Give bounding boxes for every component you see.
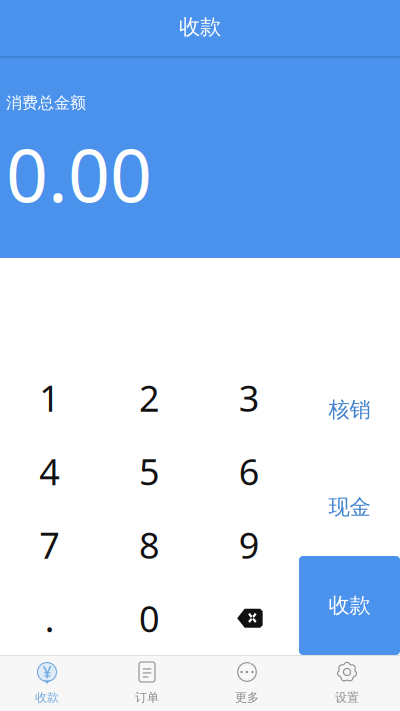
staticText: . (45, 594, 55, 642)
staticText: 核销 (328, 397, 370, 423)
staticText: ¥ (42, 661, 51, 683)
staticText: 收款 (35, 690, 59, 705)
staticText: 更多 (235, 690, 259, 705)
staticText: 1 (39, 374, 60, 422)
button[interactable]: . (0, 581, 100, 655)
staticText: 设置 (335, 690, 359, 705)
staticText: 4 (39, 447, 60, 495)
button[interactable]: 3 (199, 361, 299, 434)
button[interactable]: 2 (100, 361, 199, 434)
staticText: 现金 (328, 494, 370, 520)
button[interactable]: 6 (199, 434, 299, 508)
staticText: 收款 (328, 592, 370, 619)
staticText: 0.00 (6, 125, 152, 223)
button[interactable]: 更多 (200, 655, 300, 711)
staticText: 7 (39, 521, 60, 569)
staticText: 0 (139, 594, 160, 642)
button[interactable]: 8 (100, 508, 199, 581)
button[interactable]: 设置 (300, 655, 400, 711)
staticText: 订单 (135, 690, 159, 705)
staticText: 3 (239, 374, 260, 422)
button[interactable]: 核销 (299, 361, 400, 458)
button[interactable]: 5 (100, 434, 199, 508)
button[interactable]: 现金 (299, 458, 400, 556)
button[interactable] (199, 581, 299, 655)
button[interactable]: 收款 (299, 556, 400, 655)
staticText: 5 (139, 447, 160, 495)
button[interactable]: 9 (199, 508, 299, 581)
button[interactable]: ¥ (0, 655, 100, 711)
button[interactable]: 4 (0, 434, 100, 508)
button[interactable]: 0 (100, 581, 199, 655)
button[interactable]: 1 (0, 361, 100, 434)
staticText: 6 (239, 447, 260, 495)
staticText: 消费总金额 (6, 93, 86, 113)
staticText: 收款 (179, 14, 221, 40)
button[interactable]: 订单 (100, 655, 200, 711)
staticText: 8 (139, 521, 160, 569)
staticText: 9 (239, 521, 260, 569)
button[interactable]: 7 (0, 508, 100, 581)
staticText: 2 (139, 374, 160, 422)
